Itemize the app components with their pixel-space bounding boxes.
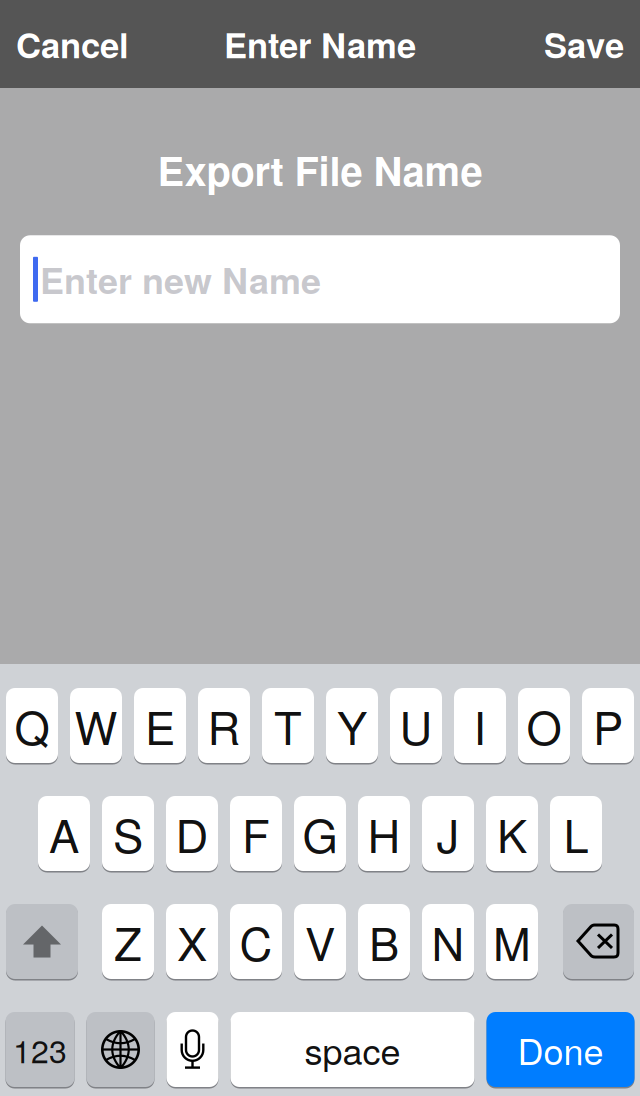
button[interactable]: H [358,795,410,872]
staticText: B [369,909,399,974]
staticText: G [302,801,337,866]
button[interactable]: W [70,687,122,764]
staticText: Cancel [16,19,129,69]
button[interactable]: space [230,1011,474,1088]
button[interactable]: J [422,795,474,872]
button[interactable]: C [230,903,282,980]
staticText: E [145,693,175,758]
button[interactable]: Cancel [0,0,129,88]
staticText: I [473,693,486,758]
button[interactable]: Save [544,0,640,88]
staticText: P [593,693,623,758]
staticText: K [497,801,527,866]
button[interactable]: Next keyboard [86,1011,154,1088]
button[interactable]: Done [486,1011,634,1088]
staticText: J [436,801,459,866]
button[interactable]: 123 [5,1011,74,1088]
button[interactable]: G [294,795,346,872]
button[interactable]: N [422,903,474,980]
staticText: Q [14,693,49,758]
staticText: Export File Name [157,141,482,198]
staticText: R [207,693,240,758]
button[interactable]: Q [6,687,58,764]
button[interactable]: Delete [563,903,634,980]
staticText: F [242,801,270,866]
staticText: L [563,801,588,866]
staticText: S [113,801,143,866]
button[interactable]: X [166,903,218,980]
button[interactable]: V [294,903,346,980]
button[interactable]: I [454,687,506,764]
staticText: A [49,801,79,866]
staticText: Y [337,693,367,758]
button[interactable]: E [134,687,186,764]
button[interactable]: F [230,795,282,872]
staticText: Enter Name [224,19,416,69]
button[interactable]: D [166,795,218,872]
button[interactable]: T [262,687,314,764]
staticText: Done [517,1024,603,1075]
staticText: Save [544,19,624,69]
staticText: W [74,693,117,758]
staticText: D [175,801,208,866]
button[interactable]: A [38,795,90,872]
staticText: C [239,909,272,974]
staticText: N [431,909,464,974]
staticText: U [399,693,432,758]
staticText: 123 [13,1027,67,1072]
button[interactable]: Dictation [166,1011,218,1088]
button[interactable]: S [102,795,154,872]
button[interactable]: U [390,687,442,764]
staticText: V [305,909,335,974]
button[interactable]: K [486,795,538,872]
button[interactable]: Z [102,903,154,980]
button[interactable]: R [198,687,250,764]
staticText: T [274,693,302,758]
button[interactable]: Shift [6,903,78,980]
button[interactable]: B [358,903,410,980]
staticText: O [526,693,561,758]
staticText: X [177,909,207,974]
button[interactable]: L [550,795,602,872]
staticText: Enter new Name [40,253,321,305]
staticText: space [304,1024,400,1075]
staticText: M [493,909,531,974]
button[interactable]: M [486,903,538,980]
button[interactable]: P [582,687,634,764]
button[interactable]: Y [326,687,378,764]
button[interactable]: O [518,687,570,764]
staticText: H [367,801,400,866]
staticText: Z [114,909,142,974]
